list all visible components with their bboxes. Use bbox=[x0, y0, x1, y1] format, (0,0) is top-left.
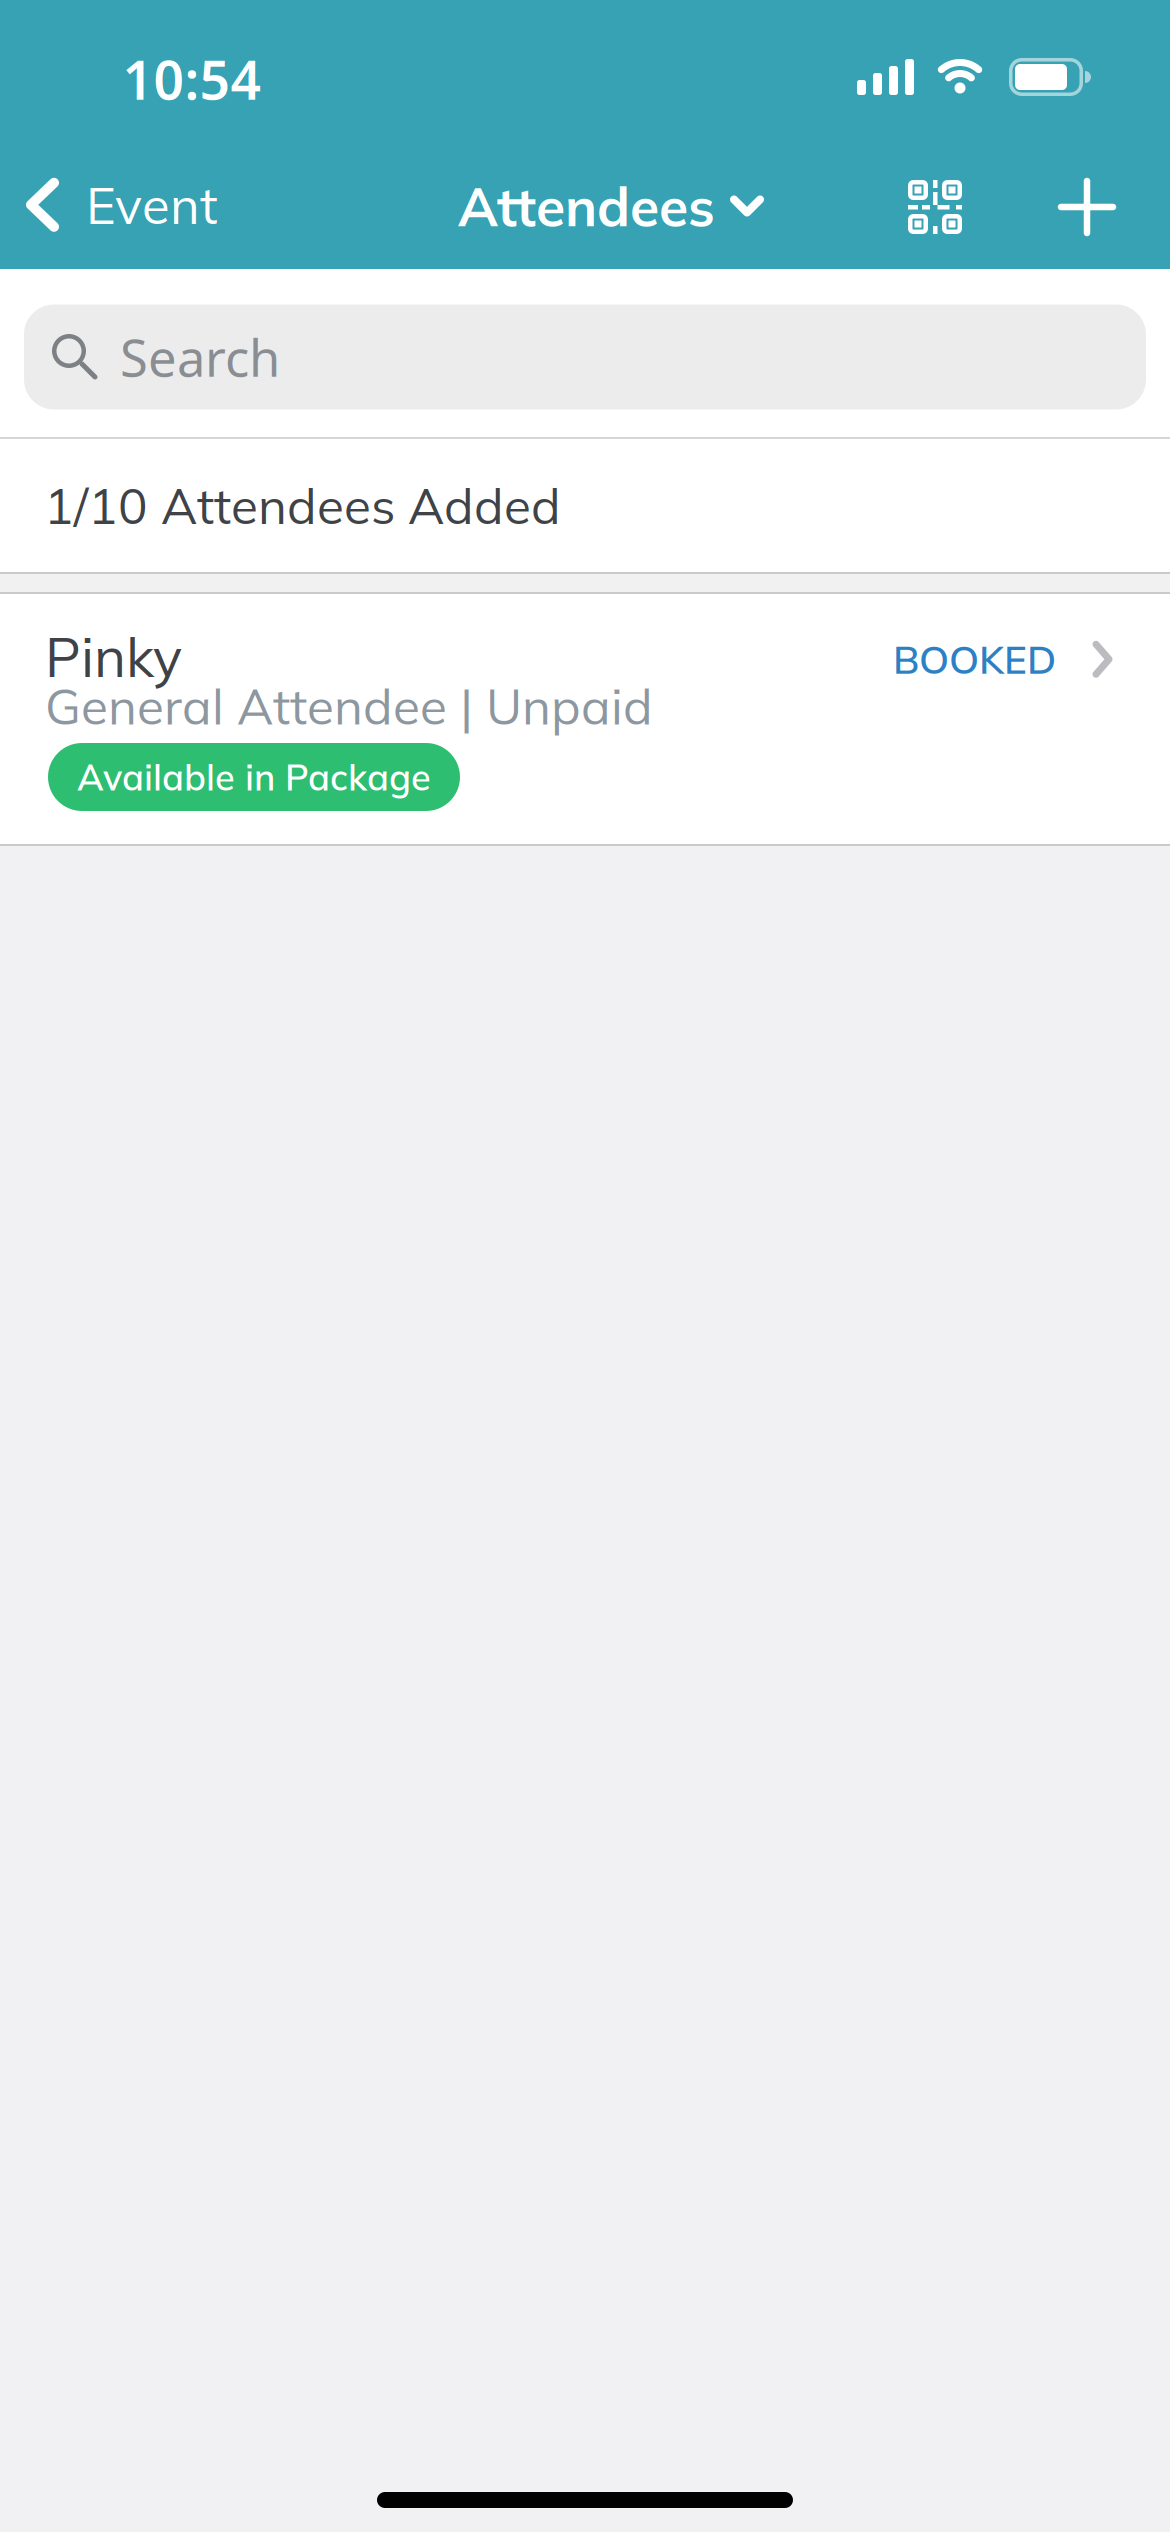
button[interactable]: Search bbox=[24, 304, 1146, 409]
staticText: 1/10 Attendees Added bbox=[44, 474, 561, 536]
button[interactable]: Add attendee bbox=[1059, 179, 1115, 235]
staticText: Attendees bbox=[458, 172, 715, 239]
button[interactable]: Scan QR code bbox=[908, 180, 962, 234]
staticText: Pinky bbox=[45, 622, 182, 691]
staticText: BOOKED bbox=[893, 635, 1056, 683]
staticText: Available in Package bbox=[77, 754, 431, 800]
staticText: 10:54 bbox=[122, 44, 261, 114]
button[interactable]: Attendees bbox=[458, 172, 764, 239]
staticText: General Attendee | Unpaid bbox=[45, 675, 653, 737]
button[interactable]: Pinky bbox=[0, 594, 1170, 844]
staticText: Search bbox=[120, 323, 280, 391]
button[interactable]: Event bbox=[24, 173, 218, 237]
staticText: Event bbox=[86, 173, 218, 237]
